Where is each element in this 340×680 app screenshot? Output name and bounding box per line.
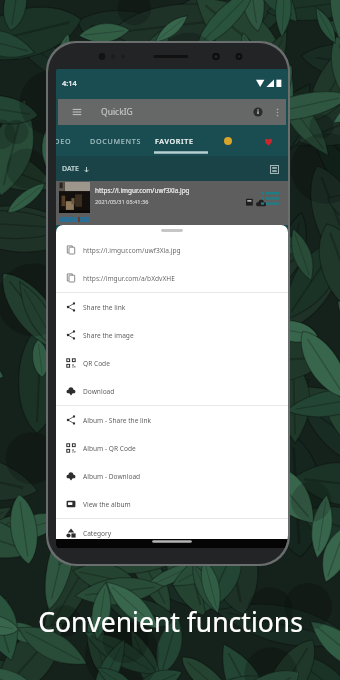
staticText: QR Code xyxy=(83,359,110,368)
staticText: https://i.imgur.com/uwf3Xla.jpg xyxy=(95,186,190,195)
button[interactable]: Switch layout xyxy=(266,161,282,177)
other: Information xyxy=(253,107,263,117)
button[interactable]: DOCUMENTS xyxy=(90,136,142,146)
other: More options xyxy=(272,107,280,118)
button[interactable]: Download xyxy=(56,377,288,405)
button[interactable]: Album - Download xyxy=(56,462,288,490)
staticText: https://imgur.com/a/bXdvXHE xyxy=(83,274,175,283)
staticText: Album - Share the link xyxy=(83,416,152,425)
staticText: Album - QR Code xyxy=(83,444,136,453)
button[interactable]: https://imgur.com/a/bXdvXHE xyxy=(56,264,288,292)
staticText: Album - Download xyxy=(83,472,141,481)
button[interactable]: QR Code xyxy=(56,349,288,377)
button[interactable]: Album - Share the link xyxy=(56,406,288,434)
staticText: 4:14 xyxy=(62,78,77,88)
button[interactable]: FAVORITE xyxy=(155,136,194,146)
button[interactable]: Share the image xyxy=(56,321,288,349)
button[interactable]: Favorite xyxy=(260,133,276,149)
button[interactable]: Category xyxy=(56,519,288,547)
staticText: Category xyxy=(83,529,112,538)
staticText: Share the link xyxy=(83,303,126,312)
button[interactable]: https://i.imgur.com/uwf3Xla.jpg xyxy=(56,181,288,225)
button[interactable]: DATE xyxy=(62,164,90,174)
other: Item options xyxy=(261,191,279,205)
button[interactable]: Theme xyxy=(220,133,236,149)
button[interactable]: Open navigation menu xyxy=(58,99,286,125)
button[interactable]: IDEO xyxy=(56,136,72,146)
other: Open navigation menu xyxy=(72,107,82,117)
staticText: View the album xyxy=(83,500,131,509)
button[interactable]: View the album xyxy=(56,490,288,518)
button[interactable]: Album - QR Code xyxy=(56,434,288,462)
staticText: DATE xyxy=(62,164,79,174)
staticText: QuickIG xyxy=(101,106,133,118)
staticText: Convenient functions xyxy=(38,604,303,640)
staticText: Share the image xyxy=(83,331,134,340)
staticText: 2021/05/31 05:41:36 xyxy=(95,198,149,206)
staticText: https://i.imgur.com/uwf3Xla.jpg xyxy=(83,246,181,255)
button[interactable]: https://i.imgur.com/uwf3Xla.jpg xyxy=(56,236,288,264)
staticText: Download xyxy=(83,387,115,396)
button[interactable]: Share the link xyxy=(56,293,288,321)
